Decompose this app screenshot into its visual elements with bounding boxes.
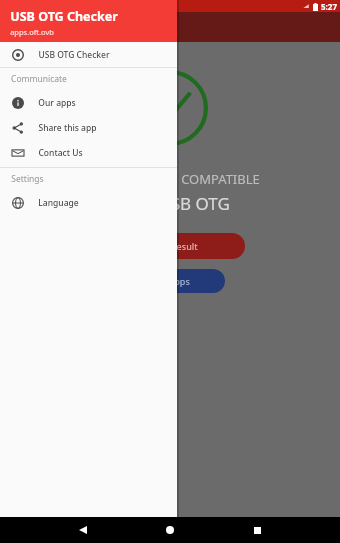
staticText: Language [38, 197, 79, 209]
staticText: SHARE result [142, 240, 198, 252]
button[interactable]: Home [157, 517, 183, 543]
staticText: Communicate [11, 73, 67, 85]
staticText: USB OTG Checker [10, 8, 118, 25]
staticText: 5:27 [321, 1, 337, 12]
staticText: Settings [11, 173, 44, 185]
button[interactable]: Our apps [115, 269, 225, 293]
staticText: Contact Us [38, 147, 83, 159]
button[interactable]: Back [70, 517, 96, 543]
button[interactable]: Language [0, 190, 177, 215]
staticText: WITH USB OTG [110, 192, 230, 215]
button[interactable]: USB OTG Checker [0, 0, 177, 42]
button[interactable]: USB OTG Checker [0, 42, 177, 67]
staticText: Our apps [38, 97, 76, 109]
staticText: USB OTG Checker [38, 49, 110, 61]
button[interactable]: Our apps [0, 90, 177, 115]
button[interactable]: Contact Us [0, 140, 177, 165]
staticText: Share this app [38, 122, 97, 134]
button[interactable]: Share this app [0, 115, 177, 140]
button[interactable]: Recents [244, 517, 270, 543]
staticText: Our apps [150, 275, 190, 287]
staticText: apps.oft.ovb [10, 27, 54, 37]
staticText: YOUR DEVICE IS COMPATIBLE [80, 170, 260, 188]
button[interactable]: SHARE result [95, 233, 245, 259]
